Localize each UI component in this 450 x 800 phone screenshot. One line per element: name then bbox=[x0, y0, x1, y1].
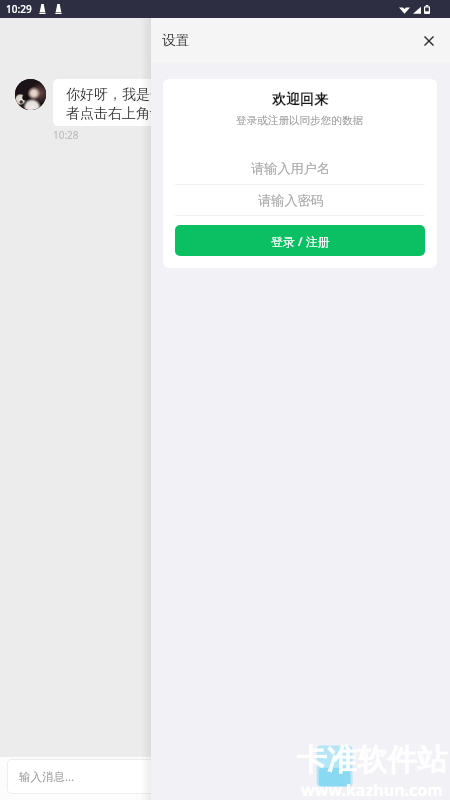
staticText: 你好呀，我是你的智能助手，你可以直接问我或者点击右上角设置按钮进行配置。 bbox=[66, 86, 362, 122]
button[interactable]: 请输入用户名 bbox=[175, 152, 425, 184]
staticText: 请输入用户名 bbox=[251, 160, 331, 177]
staticText: 欢迎回来 bbox=[272, 91, 328, 109]
button[interactable]: 登录 / 注册 bbox=[175, 225, 425, 256]
staticText: 设置 bbox=[162, 32, 190, 49]
staticText: 登录或注册以同步您的数据 bbox=[236, 114, 364, 127]
staticText: 登录 / 注册 bbox=[271, 233, 330, 249]
staticText: 请输入密码 bbox=[258, 192, 324, 209]
staticText: www.kazhun.com bbox=[301, 779, 443, 800]
staticText: 卡准软件站 bbox=[297, 741, 447, 779]
button[interactable]: Close settings bbox=[419, 31, 439, 51]
staticText: 10:29 bbox=[6, 2, 32, 16]
button[interactable]: 输入消息... bbox=[7, 759, 443, 794]
button[interactable]: 请输入密码 bbox=[175, 186, 425, 215]
staticText: 输入消息... bbox=[19, 769, 75, 785]
staticText: 10:28 bbox=[53, 128, 79, 142]
